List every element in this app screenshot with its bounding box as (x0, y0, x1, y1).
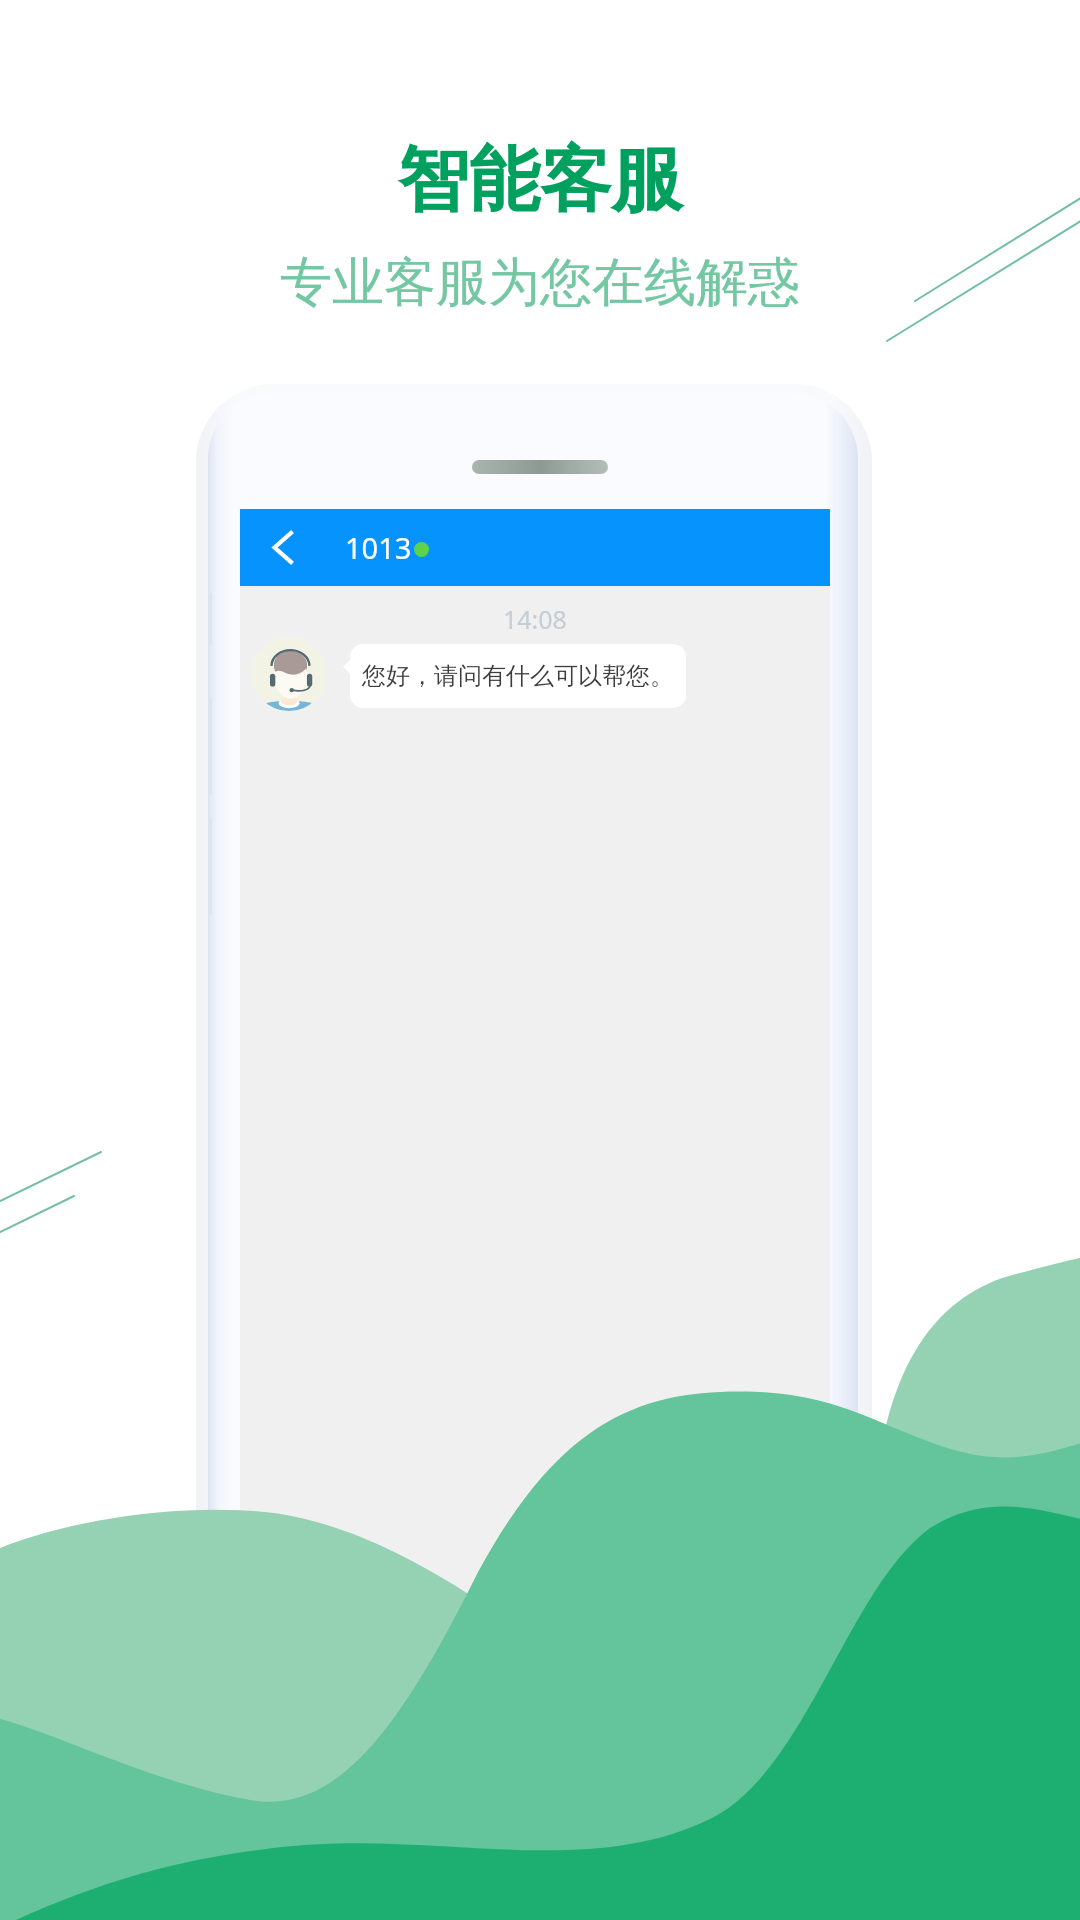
staticText: 您好，请问有什么可以帮您。 (362, 661, 674, 691)
staticText: 14:08 (503, 602, 567, 636)
button[interactable]: 您好，请问有什么可以帮您。 (350, 644, 686, 708)
button[interactable]: Agent avatar (252, 637, 326, 711)
button[interactable]: Back (240, 509, 317, 586)
staticText: 1013 (345, 528, 412, 567)
staticText: 专业客服为您在线解惑 (280, 250, 800, 316)
staticText: 智能客服 (398, 136, 682, 225)
